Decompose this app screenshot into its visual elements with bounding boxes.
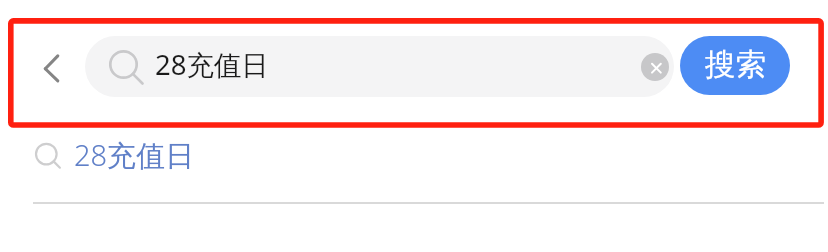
- button[interactable]: 28充值日: [0, 128, 828, 202]
- staticText: 28充值日: [155, 46, 269, 84]
- button[interactable]: Back: [31, 43, 73, 85]
- button[interactable]: Clear text: [641, 53, 669, 81]
- button[interactable]: 搜索: [680, 36, 790, 95]
- staticText: 28充值日: [74, 135, 195, 175]
- staticText: 搜索: [705, 46, 766, 84]
- button[interactable]: 28充值日: [85, 36, 674, 97]
